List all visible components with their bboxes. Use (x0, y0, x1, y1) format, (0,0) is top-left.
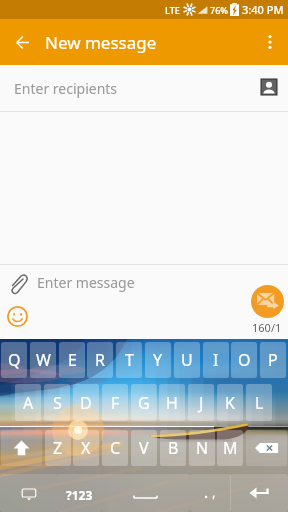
button[interactable]: E (59, 342, 85, 378)
button[interactable]: G (131, 384, 157, 421)
button[interactable]: Z (45, 430, 71, 466)
button[interactable]: Enter recipients (0, 65, 288, 110)
button[interactable]: R (87, 342, 113, 378)
button[interactable]: A (15, 384, 41, 421)
staticText: A (23, 392, 34, 414)
button[interactable]: Switch keyboard (0, 474, 58, 512)
button[interactable]: C (102, 430, 128, 466)
button[interactable]: Backspace (246, 430, 287, 466)
button[interactable]: U (174, 342, 200, 378)
button[interactable]: N (189, 430, 215, 466)
button[interactable]: Pick contact (255, 73, 283, 101)
button[interactable]: Shift (1, 430, 42, 466)
staticText: D (80, 392, 92, 414)
button[interactable]: W (30, 342, 56, 378)
staticText: B (168, 437, 179, 459)
staticText: Q (8, 349, 21, 371)
button[interactable]: Emoji (4, 303, 30, 329)
staticText: X (81, 437, 91, 459)
staticText: V (139, 437, 149, 459)
staticText: L (255, 392, 264, 414)
button[interactable]: B (160, 430, 186, 466)
button[interactable]: Q (1, 342, 27, 378)
staticText: K (225, 392, 235, 414)
button[interactable]: Enter (230, 474, 288, 512)
staticText: P (268, 349, 278, 371)
button[interactable]: J (188, 384, 214, 421)
staticText: F (111, 392, 120, 414)
button[interactable]: V (131, 430, 157, 466)
button[interactable]: Send message (251, 285, 284, 318)
button[interactable]: O (231, 342, 257, 378)
staticText: J (199, 392, 204, 414)
staticText: 160/1 (252, 320, 282, 335)
button[interactable]: K (217, 384, 243, 421)
button[interactable]: L (246, 384, 272, 421)
staticText: I (213, 349, 219, 371)
staticText: T (125, 349, 134, 371)
staticText: W (36, 349, 51, 371)
staticText: Z (53, 437, 63, 459)
staticText: E (68, 349, 77, 371)
button[interactable]: Attach (6, 271, 30, 295)
staticText: N (196, 437, 209, 459)
staticText: Enter recipients (14, 79, 118, 98)
button[interactable]: Period and comma (190, 474, 231, 512)
staticText: H (166, 392, 178, 414)
button[interactable]: I (203, 342, 229, 378)
button[interactable]: M (217, 430, 243, 466)
staticText: Y (153, 349, 163, 371)
staticText: O (238, 349, 251, 371)
button[interactable]: More options (252, 24, 288, 60)
staticText: R (95, 349, 105, 371)
staticText: ?123 (66, 487, 93, 503)
staticText: C (110, 437, 121, 459)
button[interactable]: T (116, 342, 142, 378)
button[interactable]: D (73, 384, 99, 421)
button[interactable]: Back (6, 26, 39, 59)
staticText: 3:40 PM (242, 2, 284, 17)
button[interactable]: F (102, 384, 128, 421)
button[interactable]: S (44, 384, 70, 421)
staticText: New message (45, 31, 157, 54)
button[interactable]: Y (145, 342, 171, 378)
staticText: Enter message (37, 273, 135, 292)
staticText: 76% (210, 4, 228, 16)
button[interactable]: ?123 (58, 474, 101, 512)
staticText: M (223, 437, 238, 459)
staticText: U (181, 349, 193, 371)
button[interactable]: H (159, 384, 185, 421)
staticText: LTE (165, 4, 180, 16)
staticText: G (138, 392, 150, 414)
staticText: S (53, 392, 62, 414)
button[interactable]: X (73, 430, 99, 466)
button[interactable]: P (260, 342, 286, 378)
button[interactable]: Space (101, 474, 190, 512)
